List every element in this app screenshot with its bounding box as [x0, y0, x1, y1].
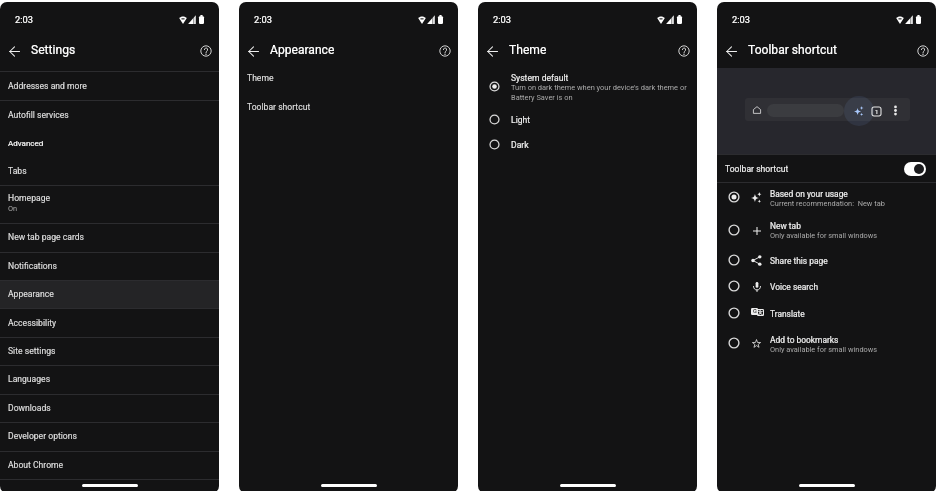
staticText: About Chrome: [8, 460, 64, 470]
button[interactable]: Help: [195, 40, 217, 62]
staticText: Homepage: [8, 193, 51, 203]
button[interactable]: Downloads: [0, 395, 219, 423]
staticText: 1: [875, 108, 879, 115]
button[interactable]: Toolbar shortcut: [239, 96, 458, 118]
staticText: Theme: [509, 43, 547, 57]
staticText: Current recommendation: New tab: [770, 199, 885, 208]
staticText: 2:03: [15, 14, 33, 25]
staticText: Only available for small windows: [770, 345, 878, 354]
staticText: 2:03: [493, 14, 511, 25]
staticText: Voice search: [770, 282, 819, 292]
button[interactable]: New tab page cards: [0, 224, 219, 252]
button[interactable]: Help: [673, 40, 695, 62]
button[interactable]: Advanced: [0, 130, 219, 159]
button[interactable]: Share this page: [717, 248, 936, 274]
staticText: Downloads: [8, 403, 51, 413]
button[interactable]: Dark: [478, 134, 697, 155]
staticText: Addresses and more: [8, 81, 87, 91]
button[interactable]: Autofill services: [0, 101, 219, 130]
staticText: G: [753, 308, 757, 315]
staticText: Notifications: [8, 261, 57, 271]
staticText: 文: [758, 310, 763, 316]
button[interactable]: Back: [3, 40, 25, 62]
button[interactable]: Appearance: [0, 281, 219, 309]
staticText: On: [8, 204, 18, 213]
staticText: Turn on dark theme when your device's da…: [511, 83, 692, 102]
button[interactable]: Light: [478, 109, 697, 130]
button[interactable]: Back: [720, 40, 742, 62]
button[interactable]: Help: [434, 40, 456, 62]
staticText: System default: [511, 73, 569, 83]
button[interactable]: Toolbar shortcut: [717, 155, 936, 182]
button[interactable]: Voice search: [717, 274, 936, 300]
staticText: Translate: [770, 309, 805, 319]
button[interactable]: 文: [717, 301, 936, 327]
button[interactable]: Developer options: [0, 423, 219, 451]
button[interactable]: Addresses and more: [0, 72, 219, 101]
staticText: Developer options: [8, 431, 77, 441]
button[interactable]: Tabs: [0, 158, 219, 186]
button[interactable]: Help: [912, 40, 934, 62]
button[interactable]: Add to bookmarks: [717, 330, 936, 359]
staticText: 2:03: [254, 14, 272, 25]
staticText: Autofill services: [8, 110, 69, 120]
staticText: Appearance: [8, 289, 54, 299]
staticText: Settings: [31, 43, 76, 57]
staticText: Dark: [511, 140, 529, 150]
staticText: Share this page: [770, 256, 828, 266]
staticText: Tabs: [8, 166, 27, 176]
staticText: Based on your usage: [770, 189, 848, 199]
button[interactable]: Based on your usage: [717, 184, 936, 213]
staticText: Light: [511, 115, 531, 125]
staticText: Advanced: [8, 139, 44, 148]
button[interactable]: Languages: [0, 366, 219, 394]
staticText: Appearance: [270, 43, 335, 57]
staticText: Add to bookmarks: [770, 335, 839, 345]
staticText: Languages: [8, 374, 51, 384]
button[interactable]: Homepage: [0, 186, 219, 224]
staticText: Toolbar shortcut: [725, 164, 789, 174]
button[interactable]: Back: [242, 40, 264, 62]
staticText: Site settings: [8, 346, 56, 356]
staticText: Only available for small windows: [770, 231, 878, 240]
staticText: New tab page cards: [8, 232, 85, 242]
staticText: 2:03: [732, 14, 750, 25]
button[interactable]: Theme: [239, 67, 458, 89]
button[interactable]: About Chrome: [0, 452, 219, 480]
button[interactable]: Notifications: [0, 253, 219, 281]
staticText: Accessibility: [8, 318, 57, 328]
button[interactable]: System default: [478, 70, 697, 103]
button[interactable]: Site settings: [0, 338, 219, 366]
button[interactable]: New tab: [717, 216, 936, 245]
staticText: Toolbar shortcut: [247, 102, 311, 112]
staticText: New tab: [770, 221, 801, 231]
staticText: Theme: [247, 73, 274, 83]
staticText: Toolbar shortcut: [748, 43, 837, 57]
button[interactable]: Accessibility: [0, 309, 219, 338]
button[interactable]: Back: [481, 40, 503, 62]
